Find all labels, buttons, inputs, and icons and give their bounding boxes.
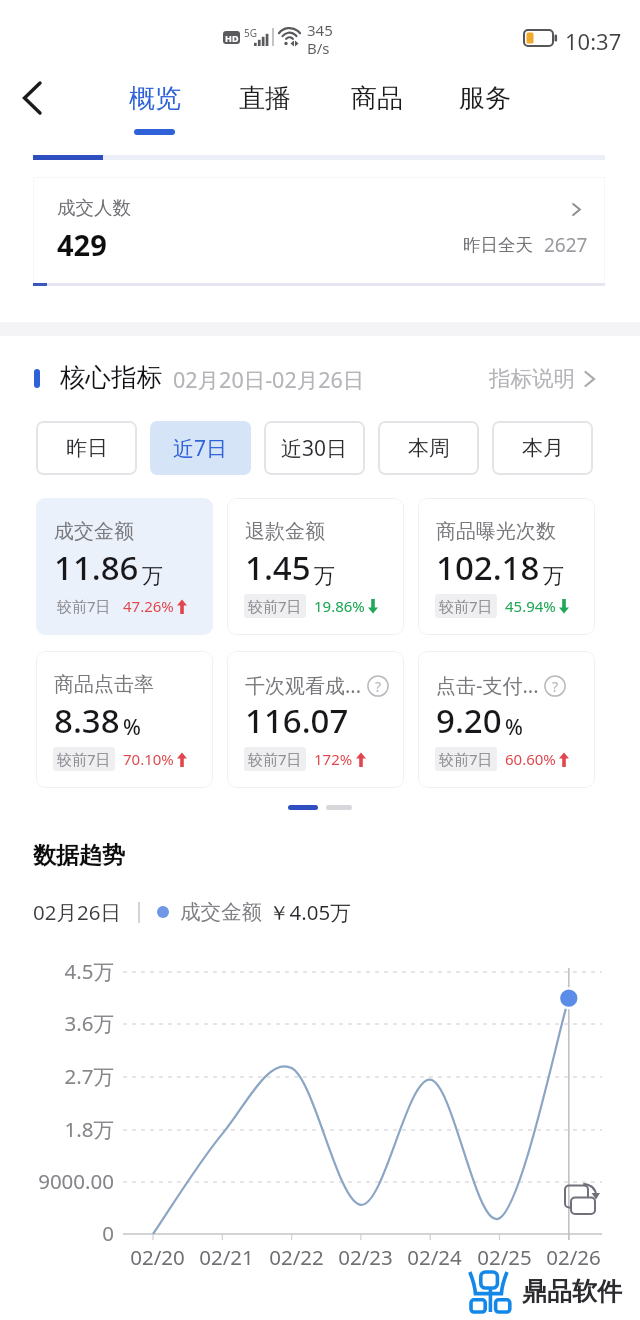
staticText: B/s xyxy=(307,38,330,58)
staticText: 02/24 xyxy=(407,1243,462,1271)
staticText: 万 xyxy=(142,563,163,589)
button[interactable]: 千次观看成... xyxy=(227,651,404,788)
button[interactable]: 商品 xyxy=(332,72,422,124)
staticText: 较前7日 xyxy=(439,749,493,769)
staticText: ? xyxy=(375,677,382,696)
staticText: 45.94% xyxy=(505,596,556,616)
staticText: 02/22 xyxy=(269,1243,324,1271)
staticText: 172% xyxy=(314,749,353,769)
button[interactable]: 成交人数 xyxy=(33,177,605,285)
staticText: 10:37 xyxy=(565,26,622,56)
button[interactable]: 近30日 xyxy=(264,421,365,475)
staticText: 本周 xyxy=(408,435,450,461)
button[interactable]: Rotate chart xyxy=(558,1178,600,1220)
staticText: 02/26 xyxy=(546,1243,601,1271)
staticText: 万 xyxy=(543,563,564,589)
staticText: 60.60% xyxy=(505,749,556,769)
button[interactable]: 指标说明 xyxy=(489,365,596,392)
staticText: 概览 xyxy=(129,82,181,115)
staticText: 3.6万 xyxy=(64,1009,114,1037)
button[interactable]: 点击-支付... xyxy=(418,651,595,788)
button[interactable]: 近7日 xyxy=(150,421,251,475)
staticText: 70.10% xyxy=(123,749,174,769)
staticText: 商品 xyxy=(351,82,403,115)
button[interactable]: 昨日 xyxy=(36,421,137,475)
staticText: 8.38 xyxy=(54,698,120,743)
staticText: 02月20日-02月26日 xyxy=(173,365,365,394)
staticText: 近7日 xyxy=(173,434,228,463)
staticText: 429 xyxy=(57,225,107,264)
staticText: 9.20 xyxy=(436,698,502,743)
staticText: ￥4.05万 xyxy=(269,898,351,926)
button[interactable]: 本周 xyxy=(378,421,479,475)
staticText: 较前7日 xyxy=(248,596,302,616)
staticText: 02/20 xyxy=(130,1243,185,1271)
staticText: 商品点击率 xyxy=(54,672,154,697)
staticText: % xyxy=(123,713,141,742)
button[interactable]: 商品点击率 xyxy=(36,651,213,788)
button[interactable]: 成交金额 xyxy=(36,498,213,635)
staticText: 47.26% xyxy=(123,596,174,616)
staticText: 成交金额 xyxy=(180,899,262,925)
staticText: 核心指标 xyxy=(60,361,162,393)
staticText: 直播 xyxy=(239,82,291,115)
staticText: 1.8万 xyxy=(64,1115,114,1143)
button[interactable]: Back xyxy=(8,72,56,124)
staticText: 近30日 xyxy=(281,434,348,463)
staticText: 19.86% xyxy=(314,596,365,616)
staticText: 02/23 xyxy=(338,1243,393,1271)
staticText: 鼎品软件 xyxy=(522,1276,622,1307)
staticText: 服务 xyxy=(459,82,511,115)
staticText: 较前7日 xyxy=(57,749,111,769)
staticText: 成交人数 xyxy=(57,196,131,219)
button[interactable]: 本月 xyxy=(492,421,593,475)
staticText: HD xyxy=(225,32,239,44)
staticText: 较前7日 xyxy=(439,596,493,616)
staticText: 02/25 xyxy=(477,1243,532,1271)
staticText: 116.07 xyxy=(245,698,349,743)
staticText: 本月 xyxy=(522,435,564,461)
staticText: 345 xyxy=(307,20,333,40)
staticText: 昨日 xyxy=(66,435,108,461)
staticText: 较前7日 xyxy=(248,749,302,769)
button[interactable]: 商品曝光次数 xyxy=(418,498,595,635)
staticText: 4.5万 xyxy=(64,957,114,985)
staticText: 02月26日 xyxy=(33,898,121,926)
staticText: 万 xyxy=(314,563,335,589)
staticText: 02/21 xyxy=(199,1243,254,1271)
staticText: 1.45 xyxy=(245,545,311,590)
staticText: 昨日全天 xyxy=(463,234,533,256)
staticText: 102.18 xyxy=(436,545,540,590)
staticText: 指标说明 xyxy=(489,365,575,392)
staticText: 11.86 xyxy=(54,545,139,590)
button[interactable]: 服务 xyxy=(440,72,530,124)
staticText: 2.7万 xyxy=(64,1062,114,1090)
staticText: 5G xyxy=(244,26,257,40)
staticText: 点击-支付... xyxy=(436,672,539,699)
staticText: 0 xyxy=(102,1219,114,1247)
staticText: 千次观看成... xyxy=(245,672,362,699)
staticText: 商品曝光次数 xyxy=(436,519,556,544)
button[interactable]: 概览 xyxy=(110,72,200,124)
staticText: % xyxy=(505,713,523,742)
staticText: 9000.00 xyxy=(38,1167,114,1195)
staticText: 退款金额 xyxy=(245,519,325,544)
staticText: 较前7日 xyxy=(57,596,111,616)
staticText: 数据趋势 xyxy=(33,841,125,870)
staticText: 成交金额 xyxy=(54,519,134,544)
staticText: 2627 xyxy=(544,232,588,258)
button[interactable]: 退款金额 xyxy=(227,498,404,635)
staticText: ? xyxy=(552,677,559,696)
button[interactable]: 直播 xyxy=(220,72,310,124)
